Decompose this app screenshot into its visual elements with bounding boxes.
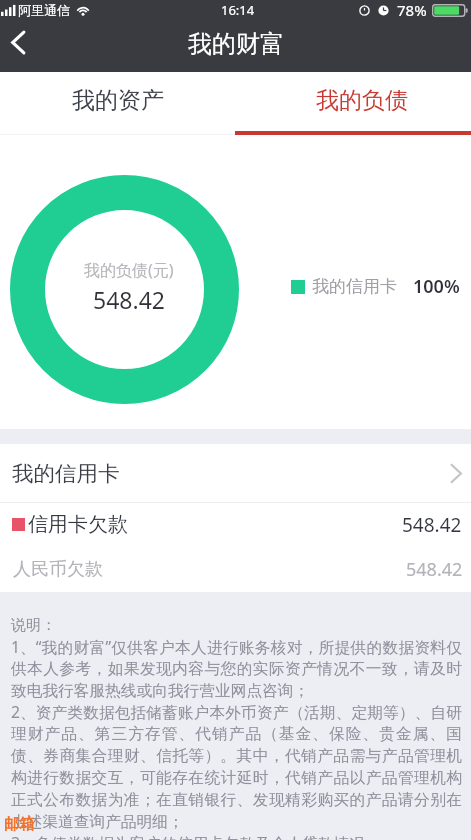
button[interactable]: 我的信用卡 [0, 444, 471, 502]
staticText: 阿里通信 [18, 2, 70, 18]
staticText: 1、“我的财富”仅供客户本人进行账务核对，所提供的数据资料仅供本人参考，如果发现… [11, 636, 462, 701]
staticText: 2、资产类数据包括储蓄账户本外币资产（活期、定期等）、自研理财产品、第三方存管、… [11, 701, 462, 832]
staticText: 548.42 [93, 284, 165, 315]
staticText: 我的信用卡 [12, 460, 120, 487]
staticText: 我的信用卡 [312, 276, 397, 297]
button[interactable]: 我的负债 [235, 72, 471, 135]
staticText: 100% [413, 274, 460, 299]
staticText: 548.42 [406, 557, 463, 582]
button[interactable]: 我的资产 [0, 72, 235, 135]
staticText: 16:14 [221, 1, 255, 19]
staticText: 邮箱 [4, 815, 34, 834]
button[interactable]: Back [0, 16, 36, 68]
staticText: 我的负债(元) [84, 259, 174, 281]
staticText: 3、负债类数据为客户的信用卡欠款及个人贷款情况； [11, 832, 381, 840]
staticText: 我的财富 [188, 29, 284, 59]
staticText: 78% [397, 0, 427, 20]
staticText: 548.42 [402, 512, 462, 538]
staticText: 我的负债 [316, 86, 408, 115]
staticText: 人民币欠款 [13, 558, 103, 581]
staticText: 信用卡欠款 [28, 512, 128, 537]
staticText: 我的资产 [72, 86, 164, 115]
staticText: 说明： [11, 616, 56, 635]
